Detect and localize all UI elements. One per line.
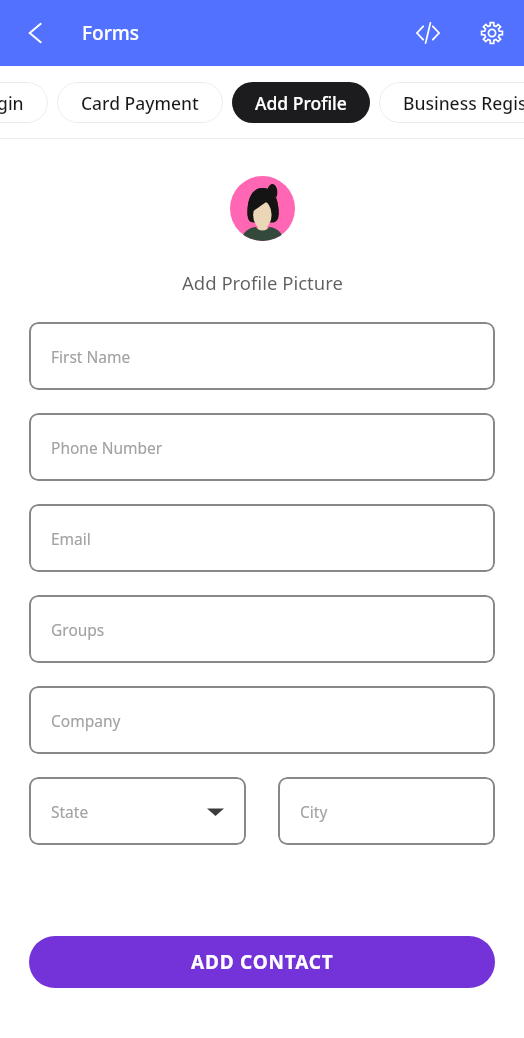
button[interactable]: Source code	[406, 11, 450, 55]
button[interactable]: State	[29, 777, 246, 845]
staticText: ADD CONTACT	[191, 949, 334, 975]
button[interactable]: City	[278, 777, 495, 845]
button[interactable]: Business Registration	[379, 82, 524, 123]
staticText: First Name	[51, 346, 131, 367]
button[interactable]: Phone Number	[29, 413, 495, 481]
button[interactable]: Add Profile	[232, 82, 370, 123]
button[interactable]: Back	[13, 11, 57, 55]
staticText: Forms	[82, 20, 139, 46]
staticText: City	[300, 801, 328, 822]
staticText: Business Registration	[403, 91, 524, 115]
staticText: Phone Number	[51, 437, 163, 458]
staticText: Groups	[51, 619, 105, 640]
button[interactable]: Settings	[470, 11, 514, 55]
button[interactable]: First Name	[29, 322, 495, 390]
button[interactable]: ADD CONTACT	[29, 936, 495, 988]
button[interactable]: Card Payment	[57, 82, 223, 123]
staticText: Company	[51, 710, 121, 731]
staticText: Add Profile	[255, 91, 347, 115]
staticText: Card Payment	[81, 91, 199, 115]
staticText: Login	[0, 91, 24, 115]
button[interactable]: Email	[29, 504, 495, 572]
button[interactable]: Login	[0, 82, 48, 123]
button[interactable]: Add profile picture	[230, 176, 295, 241]
staticText: Add Profile Picture	[182, 270, 343, 295]
button[interactable]: Company	[29, 686, 495, 754]
button[interactable]: Groups	[29, 595, 495, 663]
staticText: Email	[51, 528, 91, 549]
staticText: State	[51, 801, 89, 822]
